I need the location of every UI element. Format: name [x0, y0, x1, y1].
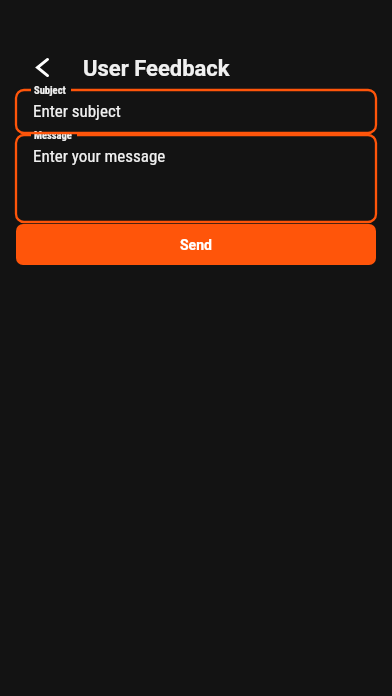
staticText: Subject — [34, 84, 66, 96]
staticText: Send — [180, 237, 212, 253]
staticText: Message — [34, 129, 72, 141]
button[interactable]: Send — [16, 224, 376, 265]
staticText: Enter subject — [33, 101, 121, 121]
staticText: Enter your message — [33, 146, 166, 166]
button[interactable]: Enter your message — [16, 135, 376, 222]
button[interactable]: Back — [25, 50, 60, 85]
button[interactable]: Enter subject — [16, 90, 376, 133]
staticText: User Feedback — [83, 56, 230, 82]
